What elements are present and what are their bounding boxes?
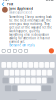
- button[interactable]: Key: [2, 78, 9, 83]
- button[interactable]: Key: [20, 70, 25, 76]
- button[interactable]: Key: [41, 85, 51, 91]
- button[interactable]: Attachment: [2, 49, 5, 52]
- button[interactable]: Key: [42, 70, 46, 76]
- button[interactable]: Key: [5, 85, 11, 91]
- button[interactable]: Back: [2, 2, 4, 6]
- button[interactable]: Key: [44, 62, 49, 68]
- button[interactable]: Key: [17, 62, 22, 68]
- button[interactable]: Key: [34, 62, 38, 68]
- button[interactable]: Key: [36, 70, 41, 76]
- button[interactable]: Key: [26, 70, 30, 76]
- button[interactable]: Key: [50, 62, 55, 68]
- button[interactable]: Key: [47, 78, 53, 83]
- button[interactable]: Key: [7, 62, 11, 68]
- button[interactable]: Key: [18, 85, 41, 91]
- button[interactable]: Key: [20, 78, 25, 83]
- button[interactable]: Key: [9, 78, 14, 83]
- button[interactable]: Key: [47, 70, 52, 76]
- button[interactable]: Attachment: [24, 49, 28, 52]
- staticText: Post: [7, 2, 13, 6]
- staticText: Something I keep coming back to: the bes…: [9, 15, 52, 43]
- staticText: 9:41: [2, 0, 9, 1]
- button[interactable]: Attachment: [19, 49, 22, 52]
- staticText: Jane Appleseed: [9, 7, 33, 10]
- button[interactable]: Key: [4, 70, 9, 76]
- button[interactable]: Attachment: [13, 49, 16, 52]
- staticText: @janeappleseed: [9, 11, 32, 14]
- button[interactable]: Key: [1, 62, 6, 68]
- button[interactable]: Key: [28, 62, 33, 68]
- button[interactable]: Attachment: [8, 49, 11, 52]
- button[interactable]: Key: [15, 78, 19, 83]
- button[interactable]: Key: [39, 62, 44, 68]
- button[interactable]: Key: [9, 70, 14, 76]
- staticText: Everyone can reply: [9, 43, 34, 47]
- button[interactable]: Post: [49, 48, 54, 53]
- button[interactable]: Key: [12, 85, 17, 91]
- button[interactable]: Key: [15, 70, 19, 76]
- button[interactable]: Key: [31, 78, 36, 83]
- button[interactable]: Key: [31, 70, 36, 76]
- button[interactable]: Key: [23, 62, 28, 68]
- button[interactable]: Key: [36, 78, 41, 83]
- button[interactable]: Key: [12, 62, 17, 68]
